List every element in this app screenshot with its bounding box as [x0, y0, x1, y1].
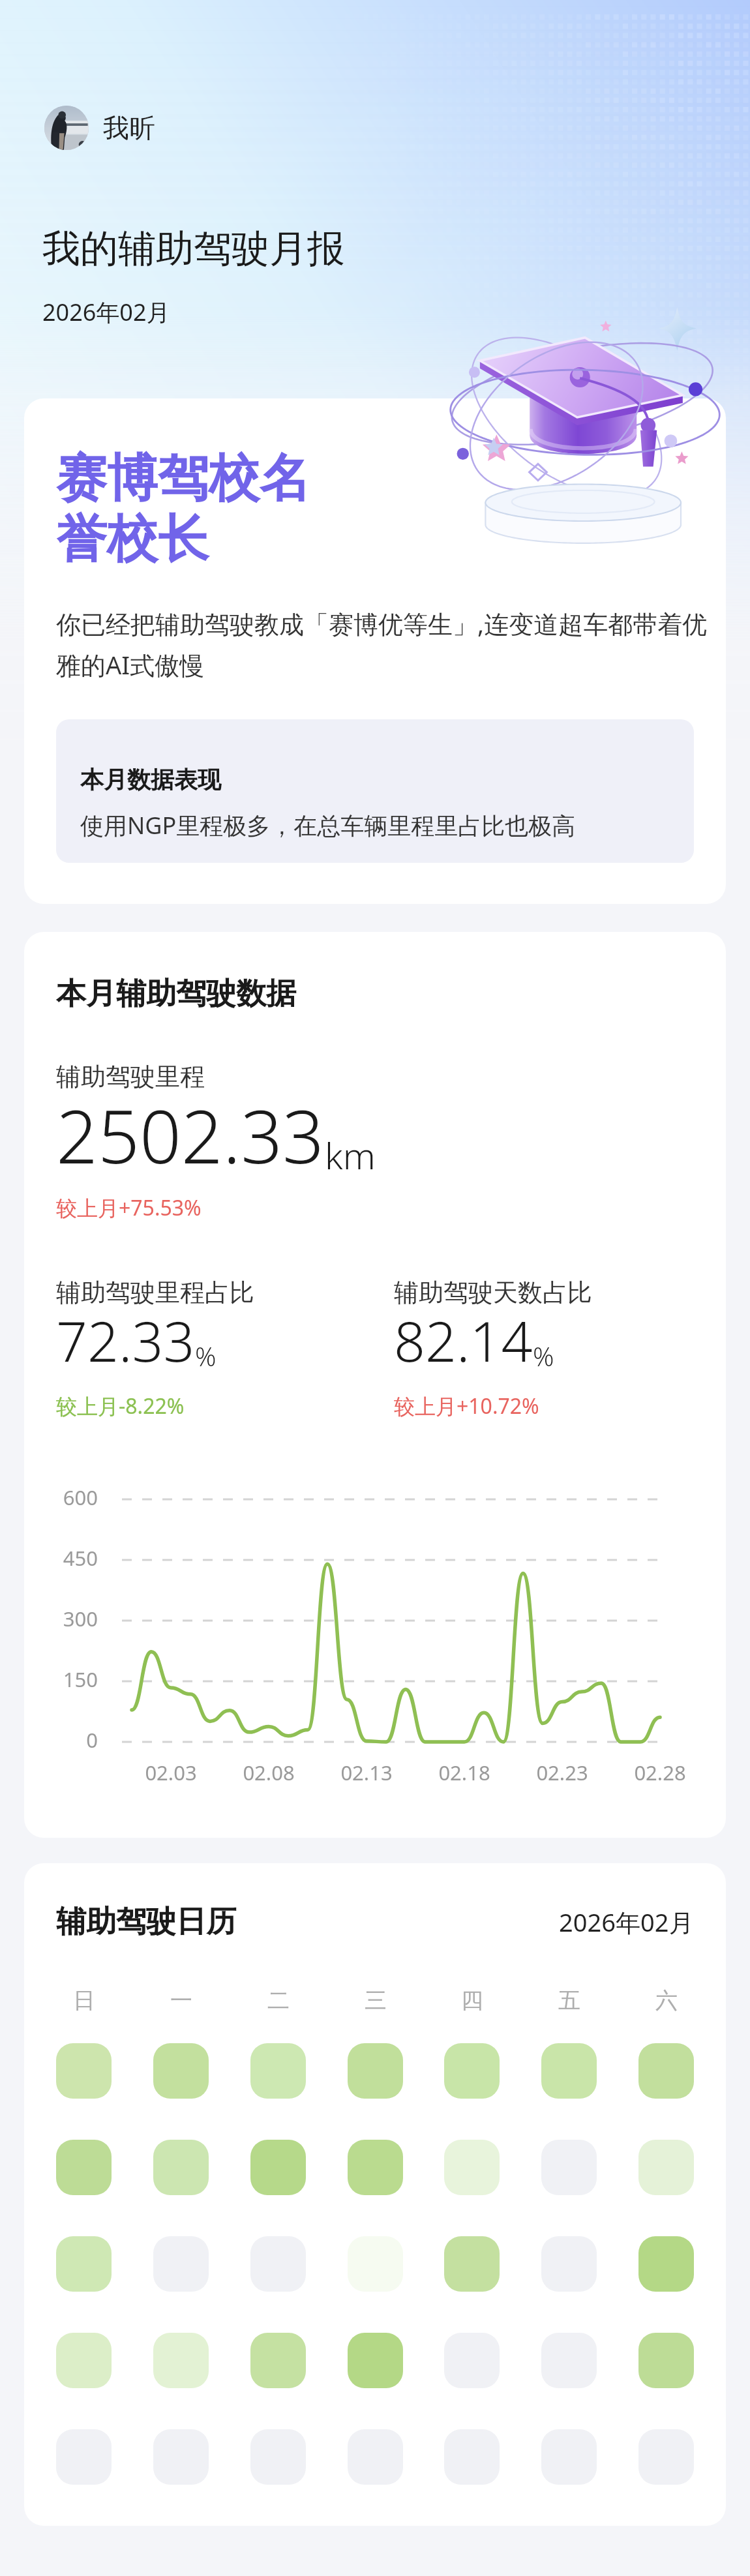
- staticText: 辅助驾驶日历: [56, 1903, 236, 1941]
- button[interactable]: [56, 2140, 112, 2195]
- staticText: 02.08: [220, 1759, 318, 1786]
- staticText: 02.03: [122, 1759, 220, 1786]
- staticText: 较上月+10.72%: [394, 1392, 539, 1420]
- button[interactable]: [638, 2140, 694, 2195]
- button[interactable]: [250, 2236, 306, 2292]
- button[interactable]: [250, 2140, 306, 2195]
- staticText: 你已经把辅助驾驶教成「赛博优等生」,连变道超车都带着优雅的AI式傲慢: [56, 607, 723, 681]
- staticText: 六: [655, 1986, 678, 2014]
- staticText: 02.18: [415, 1759, 513, 1786]
- button[interactable]: [348, 2140, 403, 2195]
- button[interactable]: [250, 2333, 306, 2388]
- button[interactable]: [153, 2140, 209, 2195]
- staticText: 五: [558, 1986, 580, 2014]
- staticText: 本月数据表现: [80, 765, 221, 794]
- staticText: 0: [33, 1726, 98, 1754]
- staticText: 辅助驾驶天数占比: [394, 1277, 592, 1308]
- staticText: 82.14: [394, 1303, 533, 1377]
- button[interactable]: [153, 2333, 209, 2388]
- staticText: 日: [73, 1986, 95, 2014]
- staticText: km: [325, 1130, 376, 1180]
- staticText: 我的辅助驾驶月报: [42, 225, 345, 273]
- staticText: 一: [170, 1986, 192, 2014]
- button[interactable]: [153, 2429, 209, 2485]
- button[interactable]: [444, 2140, 500, 2195]
- button[interactable]: [541, 2236, 597, 2292]
- staticText: %: [533, 1338, 554, 1373]
- staticText: 四: [461, 1986, 483, 2014]
- staticText: 本月辅助驾驶数据: [56, 975, 296, 1013]
- button[interactable]: [638, 2236, 694, 2292]
- button[interactable]: [348, 2043, 403, 2099]
- staticText: 2502.33: [56, 1085, 325, 1185]
- staticText: 二: [267, 1986, 290, 2014]
- staticText: 辅助驾驶里程: [56, 1061, 205, 1092]
- button[interactable]: [153, 2236, 209, 2292]
- staticText: 450: [33, 1544, 98, 1572]
- staticText: 300: [33, 1605, 98, 1632]
- button[interactable]: 我昕: [44, 106, 155, 150]
- staticText: 较上月+75.53%: [56, 1193, 202, 1222]
- staticText: 600: [33, 1484, 98, 1511]
- staticText: 150: [33, 1666, 98, 1693]
- staticText: 赛博驾校名 誉校长: [56, 447, 310, 572]
- button[interactable]: [56, 2333, 112, 2388]
- button[interactable]: [348, 2429, 403, 2485]
- button[interactable]: [348, 2333, 403, 2388]
- staticText: 72.33: [56, 1303, 195, 1377]
- button[interactable]: [56, 2043, 112, 2099]
- button[interactable]: [541, 2429, 597, 2485]
- button[interactable]: [444, 2429, 500, 2485]
- button[interactable]: [541, 2333, 597, 2388]
- staticText: %: [195, 1338, 217, 1373]
- button[interactable]: [638, 2429, 694, 2485]
- staticText: 02.23: [513, 1759, 611, 1786]
- button[interactable]: [250, 2429, 306, 2485]
- button[interactable]: [444, 2333, 500, 2388]
- staticText: 较上月-8.22%: [56, 1392, 185, 1420]
- button[interactable]: [56, 2236, 112, 2292]
- button[interactable]: [541, 2140, 597, 2195]
- staticText: 三: [365, 1986, 387, 2014]
- staticText: 2026年02月: [42, 296, 170, 328]
- staticText: 02.13: [318, 1759, 415, 1786]
- button[interactable]: [153, 2043, 209, 2099]
- button[interactable]: [56, 2429, 112, 2485]
- staticText: 2026年02月: [559, 1905, 694, 1939]
- button[interactable]: [348, 2236, 403, 2292]
- staticText: 02.28: [611, 1759, 709, 1786]
- button[interactable]: [444, 2043, 500, 2099]
- button[interactable]: [250, 2043, 306, 2099]
- button[interactable]: [638, 2333, 694, 2388]
- staticText: 我昕: [103, 112, 155, 144]
- button[interactable]: [638, 2043, 694, 2099]
- button[interactable]: [444, 2236, 500, 2292]
- staticText: 使用NGP里程极多，在总车辆里程里占比也极高: [80, 809, 576, 841]
- staticText: 辅助驾驶里程占比: [56, 1277, 254, 1308]
- button[interactable]: [541, 2043, 597, 2099]
